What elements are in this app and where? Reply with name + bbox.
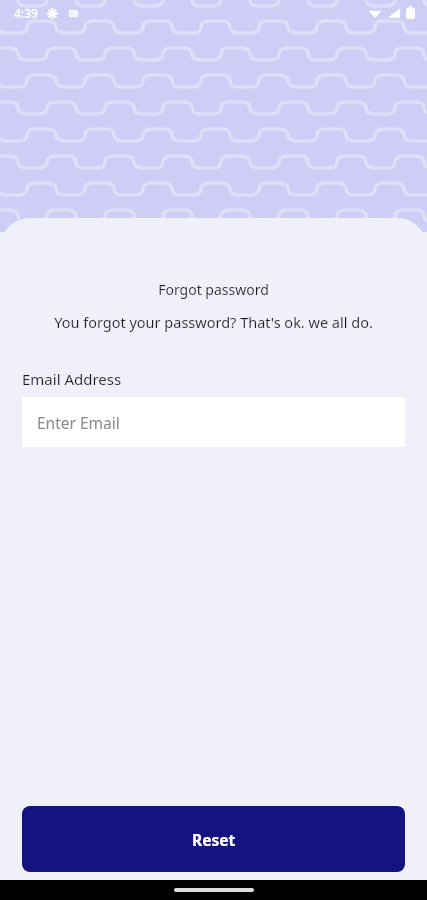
staticText: Email Address bbox=[22, 369, 122, 389]
button[interactable]: Reset bbox=[22, 806, 405, 872]
staticText: Reset bbox=[192, 829, 236, 850]
staticText: Forgot password bbox=[0, 280, 427, 299]
staticText: 4:39 bbox=[14, 5, 38, 21]
staticText: You forgot your password? That's ok. we … bbox=[14, 312, 413, 332]
staticText: Enter Email bbox=[37, 412, 120, 433]
button[interactable]: Email Address input bbox=[22, 397, 405, 447]
